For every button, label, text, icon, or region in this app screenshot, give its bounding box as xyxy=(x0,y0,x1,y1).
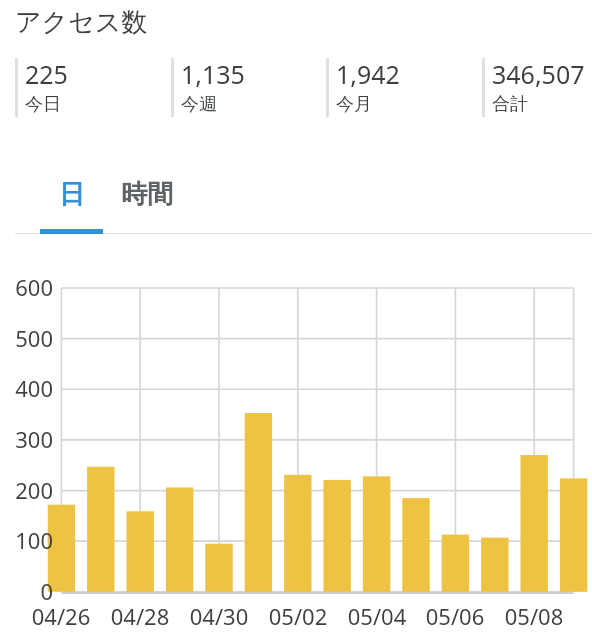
staticText: 500 xyxy=(0,323,53,353)
staticText: 今日 xyxy=(25,93,61,116)
staticText: 04/26 xyxy=(21,601,101,631)
staticText: 今週 xyxy=(181,93,217,116)
staticText: 225 xyxy=(25,57,68,91)
button[interactable]: 346,507 xyxy=(482,58,592,117)
button[interactable]: 1,135 xyxy=(171,58,321,117)
staticText: 1,135 xyxy=(181,57,245,91)
staticText: 05/02 xyxy=(258,601,338,631)
staticText: 600 xyxy=(0,272,53,302)
button[interactable]: 時間 xyxy=(109,159,185,229)
staticText: 346,507 xyxy=(492,57,585,91)
staticText: 300 xyxy=(0,424,53,454)
staticText: 400 xyxy=(0,373,53,403)
staticText: 05/08 xyxy=(494,601,574,631)
staticText: 時間 xyxy=(121,178,173,211)
staticText: 今月 xyxy=(336,93,372,116)
staticText: 0 xyxy=(0,576,53,606)
staticText: 05/06 xyxy=(415,601,495,631)
button[interactable]: 225 xyxy=(15,58,165,117)
staticText: 04/30 xyxy=(179,601,259,631)
staticText: 05/04 xyxy=(337,601,417,631)
staticText: 日 xyxy=(59,178,85,211)
staticText: 200 xyxy=(0,475,53,505)
button[interactable]: 日 xyxy=(40,159,103,229)
staticText: 1,942 xyxy=(336,57,400,91)
staticText: アクセス数 xyxy=(15,6,148,39)
staticText: 100 xyxy=(0,525,53,555)
button[interactable]: 1,942 xyxy=(326,58,476,117)
staticText: 04/28 xyxy=(100,601,180,631)
staticText: 合計 xyxy=(492,93,528,116)
